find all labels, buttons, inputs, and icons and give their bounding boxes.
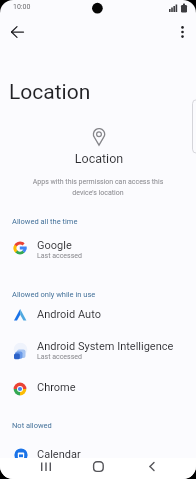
- button[interactable]: Calendar: [0, 437, 196, 459]
- button[interactable]: [5, 20, 31, 44]
- button[interactable]: [172, 20, 193, 44]
- staticText: Allowed all the time: [12, 217, 78, 226]
- staticText: Calendar: [37, 448, 81, 461]
- staticText: Google: [37, 239, 72, 252]
- staticText: Allowed only while in use: [12, 290, 96, 299]
- staticText: Location: [9, 80, 91, 105]
- staticText: Not allowed: [12, 421, 52, 430]
- staticText: Android System Intelligence: [37, 340, 174, 353]
- button[interactable]: Android System Intelligence: [0, 331, 196, 367]
- staticText: Android Auto: [37, 308, 101, 321]
- button[interactable]: [139, 458, 165, 479]
- button[interactable]: Chrome: [0, 370, 196, 406]
- staticText: Location: [1, 151, 196, 166]
- button[interactable]: [33, 458, 59, 479]
- button[interactable]: Google: [0, 230, 196, 266]
- staticText: Apps with this permission can access thi…: [0, 178, 196, 196]
- button[interactable]: [85, 458, 111, 479]
- staticText: 10:00: [13, 3, 31, 11]
- button[interactable]: Android Auto: [0, 297, 196, 333]
- staticText: Last accessed: [37, 353, 82, 361]
- staticText: Last accessed: [37, 252, 82, 260]
- staticText: Chrome: [37, 381, 76, 394]
